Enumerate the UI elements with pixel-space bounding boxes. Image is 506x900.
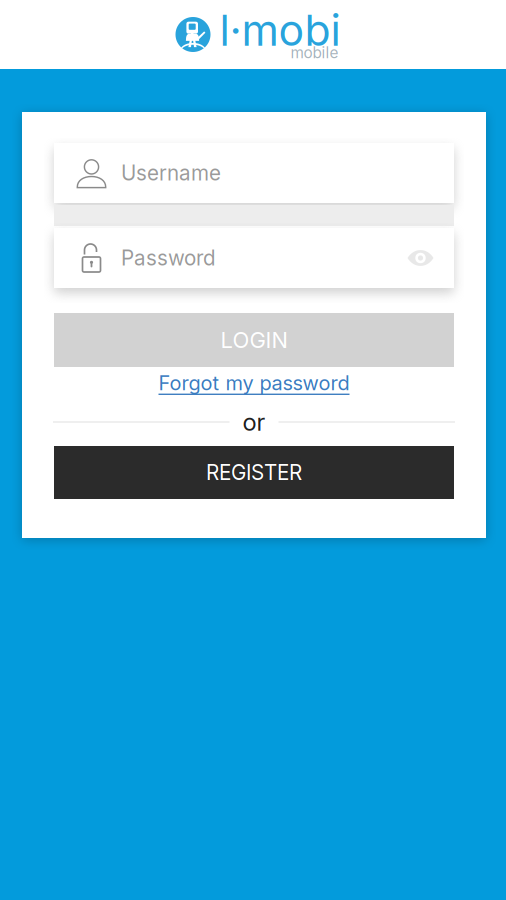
button[interactable]: LOGIN <box>54 313 454 367</box>
staticText: mobile <box>290 43 338 62</box>
staticText: or <box>242 407 265 436</box>
staticText: REGISTER <box>206 460 302 485</box>
button[interactable]: REGISTER <box>54 446 454 499</box>
staticText: Forgot my password <box>158 371 349 395</box>
button[interactable]: Forgot my password <box>54 367 454 399</box>
button[interactable]: Password <box>54 228 454 288</box>
staticText: l·mobi <box>219 4 340 56</box>
button[interactable]: Username <box>54 143 454 203</box>
staticText: Password <box>121 245 216 270</box>
staticText: Username <box>121 160 221 185</box>
staticText: LOGIN <box>220 327 287 353</box>
